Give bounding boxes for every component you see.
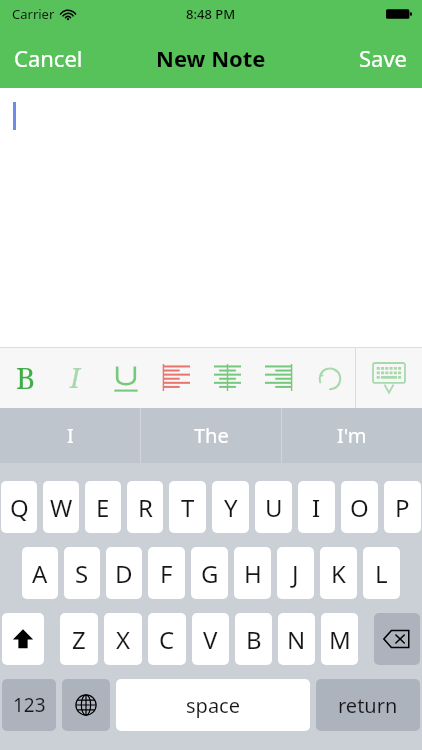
staticText: S bbox=[75, 557, 89, 590]
button[interactable]: Align center bbox=[202, 347, 253, 408]
button[interactable]: B bbox=[235, 613, 272, 665]
staticText: N bbox=[287, 623, 306, 656]
staticText: Carrier bbox=[12, 5, 55, 23]
staticText: I bbox=[312, 491, 321, 524]
staticText: I'm bbox=[337, 422, 367, 449]
button[interactable]: W bbox=[43, 481, 79, 533]
staticText: G bbox=[201, 557, 219, 590]
button[interactable]: Next keyboard bbox=[62, 679, 110, 731]
staticText: space bbox=[186, 692, 240, 719]
button[interactable]: P bbox=[384, 481, 421, 533]
staticText: 8:48 PM bbox=[186, 5, 236, 23]
staticText: B bbox=[16, 358, 35, 397]
staticText: E bbox=[96, 491, 110, 524]
staticText: X bbox=[116, 623, 131, 656]
button[interactable]: return bbox=[316, 679, 420, 731]
button[interactable]: Z bbox=[60, 613, 98, 665]
button[interactable]: I bbox=[298, 481, 335, 533]
staticText: D bbox=[115, 557, 133, 590]
button[interactable]: E bbox=[85, 481, 121, 533]
staticText: K bbox=[331, 557, 346, 590]
button[interactable]: O bbox=[341, 481, 378, 533]
button[interactable]: Save bbox=[345, 33, 422, 83]
staticText: O bbox=[350, 491, 369, 524]
staticText: U bbox=[265, 491, 283, 524]
button[interactable]: T bbox=[169, 481, 206, 533]
button[interactable]: S bbox=[64, 547, 100, 599]
button[interactable]: Bold bbox=[0, 347, 50, 408]
staticText: return bbox=[338, 692, 398, 719]
button[interactable]: X bbox=[104, 613, 142, 665]
staticText: L bbox=[375, 557, 388, 590]
button[interactable]: Y bbox=[212, 481, 249, 533]
button[interactable]: A bbox=[22, 547, 58, 599]
button[interactable]: F bbox=[148, 547, 185, 599]
staticText: 123 bbox=[13, 692, 46, 718]
button[interactable]: Underline bbox=[100, 347, 151, 408]
button[interactable]: Shift bbox=[2, 613, 44, 665]
staticText: R bbox=[138, 491, 153, 524]
button[interactable]: U bbox=[255, 481, 292, 533]
staticText: A bbox=[32, 557, 48, 590]
button[interactable] bbox=[0, 88, 422, 347]
staticText: Cancel bbox=[14, 43, 83, 73]
button[interactable]: Backspace bbox=[374, 613, 420, 665]
staticText: The bbox=[194, 422, 229, 449]
staticText: Y bbox=[224, 491, 238, 524]
staticText: I bbox=[70, 359, 80, 396]
staticText: W bbox=[50, 491, 73, 524]
button[interactable]: Q bbox=[1, 481, 37, 533]
button[interactable]: Undo bbox=[304, 347, 355, 408]
button[interactable]: I'm bbox=[282, 408, 422, 463]
staticText: V bbox=[203, 623, 218, 656]
button[interactable]: M bbox=[321, 613, 358, 665]
button[interactable]: H bbox=[234, 547, 271, 599]
staticText: Q bbox=[10, 491, 29, 524]
staticText: J bbox=[292, 557, 299, 590]
button[interactable]: C bbox=[148, 613, 186, 665]
staticText: P bbox=[395, 491, 410, 524]
button[interactable]: J bbox=[277, 547, 314, 599]
button[interactable]: G bbox=[191, 547, 228, 599]
button[interactable]: R bbox=[127, 481, 163, 533]
staticText: I bbox=[67, 422, 74, 449]
button[interactable]: Hide keyboard bbox=[355, 347, 422, 408]
button[interactable]: L bbox=[363, 547, 400, 599]
staticText: F bbox=[160, 557, 173, 590]
staticText: T bbox=[181, 491, 195, 524]
button[interactable]: I bbox=[0, 408, 140, 463]
button[interactable]: Align right bbox=[253, 347, 304, 408]
staticText: Save bbox=[359, 43, 408, 73]
button[interactable]: Align left bbox=[151, 347, 202, 408]
button[interactable]: V bbox=[192, 613, 229, 665]
button[interactable]: Cancel bbox=[0, 33, 97, 83]
staticText: New Note bbox=[156, 43, 266, 73]
staticText: H bbox=[244, 557, 262, 590]
button[interactable]: The bbox=[141, 408, 281, 463]
button[interactable]: Italic bbox=[50, 347, 100, 408]
staticText: Z bbox=[72, 623, 86, 656]
button[interactable]: 123 bbox=[2, 679, 56, 731]
button[interactable]: N bbox=[278, 613, 315, 665]
staticText: C bbox=[159, 623, 175, 656]
button[interactable]: K bbox=[320, 547, 357, 599]
staticText: B bbox=[246, 623, 262, 656]
button[interactable]: D bbox=[106, 547, 142, 599]
button[interactable]: space bbox=[116, 679, 310, 731]
staticText: M bbox=[329, 623, 351, 656]
